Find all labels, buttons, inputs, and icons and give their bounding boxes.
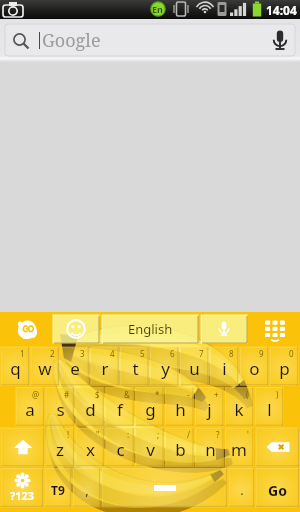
staticText: y	[161, 357, 170, 380]
staticText: 5	[140, 348, 145, 359]
button[interactable]: Keyboard layouts	[252, 312, 298, 345]
staticText: English	[128, 320, 173, 338]
staticText: h	[175, 398, 186, 421]
staticText: u	[189, 357, 200, 380]
staticText: t	[132, 357, 139, 380]
button[interactable]: GO Keyboard menu	[2, 312, 50, 345]
staticText: w	[38, 357, 52, 380]
button[interactable]: Space	[102, 469, 227, 507]
staticText: Google	[42, 28, 101, 53]
button[interactable]: m	[225, 428, 253, 466]
button[interactable]: v	[136, 428, 164, 466]
button[interactable]: x	[76, 428, 104, 466]
staticText: g	[145, 398, 156, 421]
button[interactable]: Symbols	[1, 469, 43, 507]
button[interactable]: Go	[256, 469, 299, 507]
button[interactable]: a	[16, 388, 44, 426]
staticText: c	[116, 438, 125, 461]
button[interactable]: d	[76, 388, 104, 426]
button[interactable]: English	[102, 315, 198, 343]
button[interactable]: e	[61, 347, 89, 385]
staticText: ?123	[10, 488, 35, 503]
staticText: !	[67, 429, 70, 440]
staticText: '	[247, 429, 249, 440]
staticText: 8	[229, 348, 234, 359]
staticText: 9	[259, 348, 264, 359]
staticText: .	[240, 481, 244, 499]
staticText: n	[205, 438, 216, 461]
staticText: $	[95, 389, 100, 400]
staticText: d	[85, 398, 96, 421]
staticText: l	[267, 398, 272, 421]
button[interactable]: l	[255, 388, 283, 426]
staticText: @	[32, 389, 40, 400]
button[interactable]: Voice search	[260, 19, 300, 62]
staticText: 3	[80, 348, 85, 359]
staticText: s	[56, 398, 65, 421]
button[interactable]: Emoji	[53, 315, 99, 343]
button[interactable]: Delete	[256, 428, 299, 466]
staticText: "	[96, 429, 100, 440]
staticText: *	[155, 389, 160, 400]
staticText: q	[10, 357, 21, 380]
staticText: p	[279, 357, 290, 380]
button[interactable]: w	[31, 347, 59, 385]
staticText: 14:04	[266, 2, 297, 18]
button[interactable]: Voice input	[201, 315, 247, 343]
button[interactable]: Google	[0, 19, 300, 62]
staticText: +	[214, 389, 219, 400]
button[interactable]: k	[225, 388, 253, 426]
button[interactable]: f	[106, 388, 134, 426]
staticText: -	[187, 389, 190, 400]
button[interactable]: c	[106, 428, 134, 466]
staticText: Go	[268, 481, 287, 500]
button[interactable]: u	[180, 347, 208, 385]
button[interactable]: o	[240, 347, 268, 385]
button[interactable]: b	[166, 428, 194, 466]
staticText: 2	[50, 348, 55, 359]
staticText: /	[187, 429, 190, 440]
staticText: 7	[199, 348, 204, 359]
button[interactable]: t	[121, 347, 149, 385]
staticText: En	[152, 3, 163, 15]
staticText: 0	[289, 348, 294, 359]
button[interactable]: r	[91, 347, 119, 385]
button[interactable]: g	[136, 388, 164, 426]
staticText: ;	[157, 429, 160, 440]
staticText: #	[64, 389, 70, 400]
staticText: j	[207, 398, 212, 421]
staticText: i	[222, 357, 227, 380]
button[interactable]: h	[166, 388, 194, 426]
button[interactable]: z	[46, 428, 74, 466]
staticText: z	[56, 438, 64, 461]
staticText: e	[70, 357, 80, 380]
staticText: b	[175, 438, 186, 461]
button[interactable]: Shift	[1, 428, 44, 466]
staticText: 6	[170, 348, 175, 359]
button[interactable]: ,	[73, 469, 100, 507]
staticText: m	[231, 438, 247, 461]
button[interactable]: q	[1, 347, 29, 385]
button[interactable]: y	[151, 347, 179, 385]
staticText: 4	[110, 348, 115, 359]
staticText: :	[127, 429, 130, 440]
staticText: &	[124, 389, 130, 400]
staticText: )	[276, 389, 279, 400]
staticText: k	[234, 398, 244, 421]
button[interactable]: p	[270, 347, 298, 385]
staticText: (	[246, 389, 249, 400]
staticText: 1	[20, 348, 25, 359]
button[interactable]: n	[196, 428, 224, 466]
staticText: f	[117, 398, 123, 421]
staticText: ?	[216, 429, 220, 440]
button[interactable]: j	[195, 388, 223, 426]
button[interactable]: s	[46, 388, 74, 426]
button[interactable]: T9	[45, 469, 71, 507]
staticText: T9	[51, 482, 65, 498]
staticText: o	[249, 357, 260, 380]
staticText: a	[25, 398, 35, 421]
button[interactable]: .	[229, 469, 254, 507]
button[interactable]: i	[210, 347, 238, 385]
staticText: x	[86, 438, 95, 461]
staticText: r	[101, 357, 109, 380]
